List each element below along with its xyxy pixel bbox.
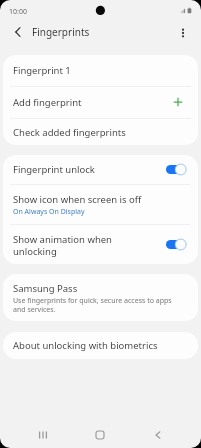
button[interactable]: Samsung Pass [3,274,198,321]
button[interactable]: Add fingerprint [3,87,198,118]
staticText: Samsung Pass [13,282,78,295]
button[interactable]: Fingerprint 1 [3,55,198,86]
staticText: Check added fingerprints [13,126,190,139]
staticText: Fingerprints [32,25,90,39]
staticText: On Always On Display [13,207,85,217]
button[interactable]: Recent apps [14,418,71,448]
other: Add fingerprint [171,95,185,109]
button[interactable]: Back [129,418,187,448]
staticText: About unlocking with biometrics [13,339,190,352]
button[interactable]: Fingerprint unlock [3,155,198,184]
button[interactable]: More options [172,21,194,43]
button[interactable]: Check added fingerprints [3,119,198,145]
button[interactable]: Navigate up [7,21,29,43]
other: Toggle [166,163,186,176]
staticText: Show animation when unlocking [13,233,166,257]
staticText: Fingerprint unlock [13,163,166,176]
button[interactable]: Home [71,418,129,448]
staticText: 10:00 [9,7,27,17]
button[interactable]: Show animation when unlocking [3,225,198,264]
button[interactable]: Show icon when screen is off [3,185,198,224]
button[interactable]: About unlocking with biometrics [3,332,198,359]
staticText: Add fingerprint [13,96,176,109]
staticText: Use fingerprints for quick, secure acces… [13,296,172,314]
staticText: Fingerprint 1 [13,64,190,77]
other: Toggle [166,238,186,251]
staticText: Show icon when screen is off [13,193,142,206]
